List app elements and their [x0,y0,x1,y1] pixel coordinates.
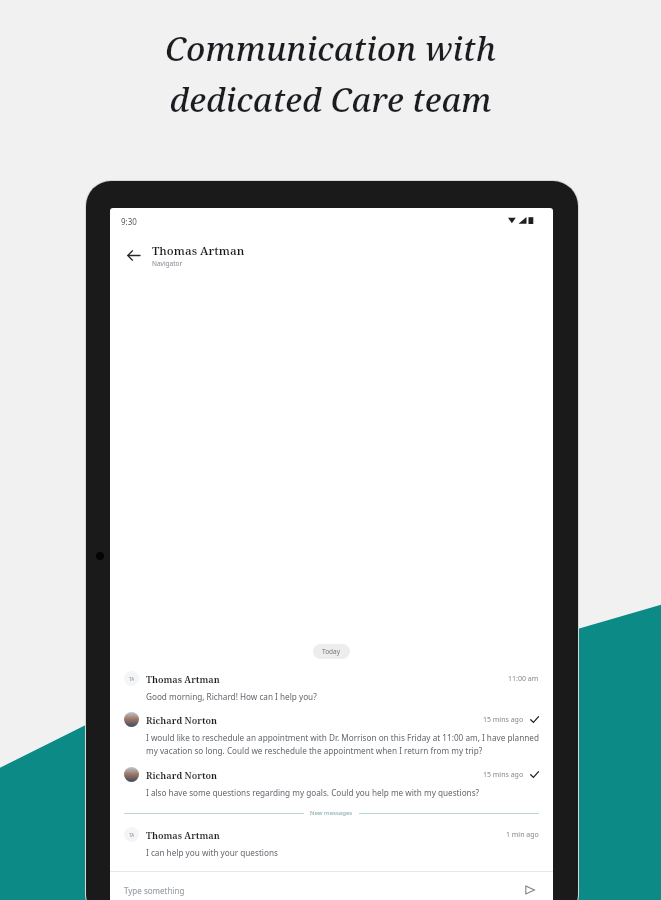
button[interactable]: Back [120,242,146,268]
staticText: Communication with [165,26,496,71]
staticText: Thomas Artman [152,243,245,259]
staticText: I can help you with your questions [146,847,278,858]
staticText: I also have some questions regarding my … [146,787,480,798]
staticText: Thomas Artman [146,673,220,685]
staticText: 9:30 [121,216,137,227]
staticText: Thomas Artman [146,829,220,841]
staticText: Type something [124,885,185,896]
staticText: dedicated Care team [169,77,492,122]
button[interactable]: Send [521,881,539,899]
staticText: Navigator [152,259,183,268]
button[interactable]: TA [110,671,553,702]
staticText: Richard Norton [146,714,218,726]
staticText: Good morning, Richard! How can I help yo… [146,691,317,702]
staticText: TA [129,832,135,838]
staticText: 1 min ago [506,830,539,840]
button[interactable]: TA [110,827,553,858]
staticText: 11:00 am [508,674,539,684]
staticText: New messages [310,809,353,817]
staticText: TA [129,676,135,682]
staticText: 15 mins ago [483,770,524,780]
button[interactable]: Today [313,644,350,659]
staticText: I would like to reschedule an appointmen… [146,732,539,757]
button[interactable]: Richard Norton [110,767,553,798]
staticText: Today [322,647,341,656]
staticText: Richard Norton [146,769,218,781]
staticText: 15 mins ago [483,715,524,725]
button[interactable]: Type something [124,885,521,896]
button[interactable]: Richard Norton [110,712,553,757]
